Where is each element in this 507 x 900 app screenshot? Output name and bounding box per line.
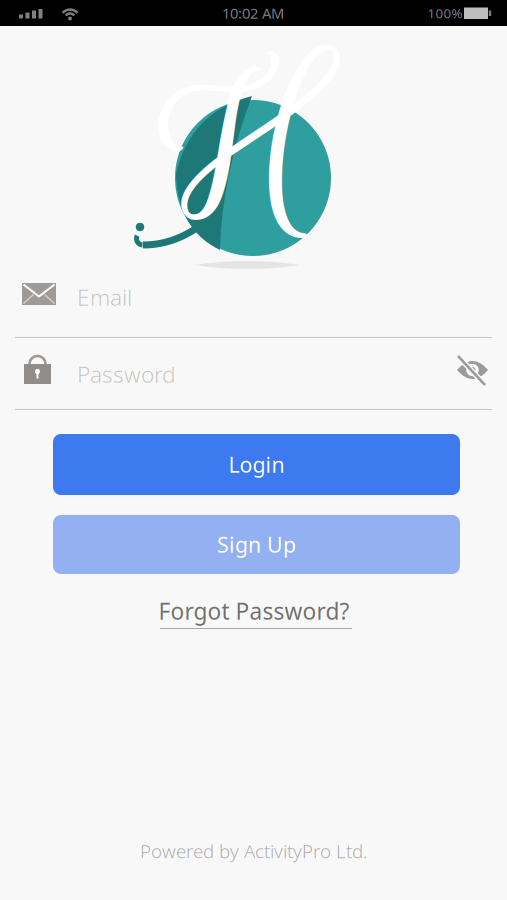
staticText: Powered by ActivityPro Ltd.	[140, 839, 368, 863]
staticText: Forgot Password?	[158, 596, 349, 626]
button[interactable]: Password	[0, 352, 507, 386]
staticText: 10:02 AM	[222, 3, 284, 23]
staticText: 100%	[427, 4, 462, 22]
staticText: Password	[77, 359, 176, 389]
staticText: Login	[228, 450, 284, 479]
button[interactable]: Email	[0, 281, 507, 313]
button[interactable]: Show password	[451, 353, 494, 387]
staticText: Sign Up	[217, 530, 296, 559]
button[interactable]: Login	[53, 434, 460, 495]
staticText: H	[158, 9, 319, 283]
staticText: H	[156, 8, 317, 282]
staticText: Email	[77, 282, 132, 312]
button[interactable]: Forgot Password?	[154, 592, 353, 630]
button[interactable]: Sign Up	[53, 515, 460, 574]
